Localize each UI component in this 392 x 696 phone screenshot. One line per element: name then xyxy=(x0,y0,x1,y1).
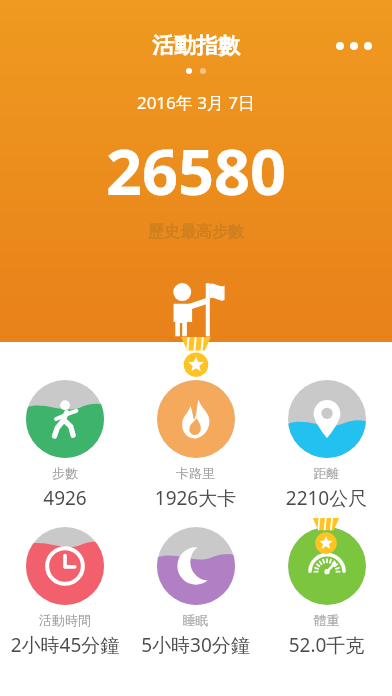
staticText: 2小時45分鐘 xyxy=(0,632,130,658)
button[interactable]: 活動時間 xyxy=(0,527,130,658)
staticText: 距離 xyxy=(261,465,392,481)
staticText: 1926大卡 xyxy=(130,485,261,511)
button[interactable]: 卡路里 xyxy=(130,380,261,511)
staticText: 歷史最高步數 xyxy=(0,222,392,242)
staticText: 活動時間 xyxy=(0,612,130,628)
staticText: 2016年 3月 7日 xyxy=(0,91,392,114)
staticText: 4926 xyxy=(0,485,130,511)
other: Personal record xyxy=(166,281,224,343)
staticText: 52.0千克 xyxy=(261,632,392,658)
button[interactable]: More options xyxy=(328,30,380,62)
button[interactable]: 睡眠 xyxy=(130,527,261,658)
staticText: 26580 xyxy=(0,128,392,214)
staticText: 5小時30分鐘 xyxy=(130,632,261,658)
button[interactable]: 距離 xyxy=(261,380,392,511)
staticText: 睡眠 xyxy=(130,612,261,628)
staticText: 卡路里 xyxy=(130,465,261,481)
staticText: 2210公尺 xyxy=(261,485,392,511)
button[interactable]: 體重 xyxy=(261,527,392,658)
staticText: 步數 xyxy=(0,465,130,481)
staticText: 體重 xyxy=(261,612,392,628)
button[interactable]: 步數 xyxy=(0,380,130,511)
staticText: 活動指數 xyxy=(152,32,240,60)
